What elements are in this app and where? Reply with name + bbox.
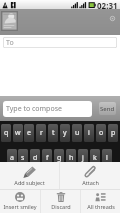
staticText: a	[10, 153, 14, 163]
staticText: Send	[100, 105, 115, 113]
button[interactable]: k	[90, 149, 100, 167]
button[interactable]: j	[78, 149, 88, 167]
staticText: s	[21, 153, 25, 163]
button[interactable]: l	[102, 149, 112, 167]
staticText: p	[111, 128, 116, 138]
button[interactable]: g	[54, 149, 64, 167]
button[interactable]: Contact photo	[1, 11, 18, 31]
staticText: k	[93, 153, 97, 163]
button[interactable]: To	[3, 37, 117, 48]
staticText: Type to compose	[6, 104, 62, 114]
staticText: All threads	[87, 203, 115, 210]
button[interactable]: q	[1, 124, 11, 142]
staticText: i	[88, 128, 90, 138]
staticText: y	[63, 128, 67, 138]
staticText: l	[106, 153, 108, 163]
button[interactable]: All threads	[81, 190, 120, 213]
staticText: q	[4, 128, 9, 138]
button[interactable]: h	[66, 149, 76, 167]
staticText: Insert smiley	[3, 203, 37, 210]
button[interactable]: p	[108, 124, 118, 142]
staticText: 02:31	[97, 0, 118, 9]
button[interactable]: o	[96, 124, 106, 142]
staticText: To	[6, 38, 14, 48]
button[interactable]: Type to compose	[3, 101, 92, 117]
button[interactable]: Add subject	[0, 162, 59, 189]
staticText: g	[57, 153, 62, 163]
button[interactable]: i	[84, 124, 94, 142]
button[interactable]: w	[13, 124, 23, 142]
staticText: e	[27, 128, 31, 138]
staticText: Add subject	[14, 179, 45, 186]
staticText: h	[69, 153, 74, 163]
staticText: r	[40, 128, 43, 138]
staticText: u	[75, 128, 80, 138]
staticText: j	[82, 153, 84, 163]
button[interactable]: Insert smiley	[0, 190, 40, 213]
staticText: Attach	[82, 179, 99, 186]
button[interactable]: a	[7, 149, 17, 167]
button[interactable]: d	[30, 149, 40, 167]
button[interactable]: Attach	[60, 162, 120, 189]
staticText: f	[46, 153, 49, 163]
button[interactable]: y	[60, 124, 70, 142]
staticText: t	[52, 128, 55, 138]
button[interactable]: f	[42, 149, 52, 167]
staticText: d	[33, 153, 38, 163]
button[interactable]: u	[72, 124, 82, 142]
button[interactable]: Contact options	[110, 16, 115, 21]
button[interactable]: Discard	[41, 190, 80, 213]
button[interactable]: e	[24, 124, 34, 142]
button[interactable]: r	[36, 124, 46, 142]
button[interactable]: Send	[99, 102, 116, 115]
button[interactable]: s	[18, 149, 28, 167]
staticText: w	[15, 128, 21, 138]
staticText: o	[99, 128, 104, 138]
staticText: Discard	[51, 203, 71, 210]
button[interactable]: t	[48, 124, 58, 142]
